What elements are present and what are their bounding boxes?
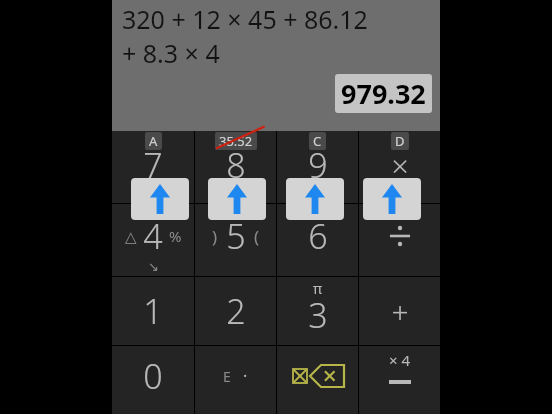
staticText: · — [243, 365, 248, 387]
button[interactable]: π — [277, 277, 358, 345]
button[interactable]: Move up B — [208, 178, 266, 220]
button[interactable] — [359, 204, 440, 276]
button[interactable]: E — [195, 346, 276, 414]
button[interactable]: × 4 — [359, 346, 440, 414]
staticText: 8 — [226, 142, 246, 188]
staticText: 0 — [143, 353, 163, 399]
staticText: × — [391, 145, 409, 186]
button[interactable]: 35.52 — [195, 131, 276, 203]
button[interactable]: ) — [195, 204, 276, 276]
button[interactable]: Move up A — [131, 178, 189, 220]
staticText: 5 — [226, 213, 246, 259]
staticText: 979.32 — [341, 75, 426, 112]
staticText: ( — [254, 225, 260, 248]
button[interactable]: 6 — [277, 204, 358, 276]
staticText: 7 — [143, 142, 163, 188]
staticText: × 4 — [389, 350, 411, 370]
staticText: A — [149, 132, 158, 150]
staticText: % — [169, 226, 182, 246]
button[interactable]: 0 — [112, 346, 194, 414]
button[interactable]: A — [112, 131, 194, 203]
staticText: π — [313, 279, 323, 298]
staticText: 9 — [308, 142, 328, 188]
staticText: 1 — [143, 288, 163, 334]
button[interactable]: 1 — [112, 277, 194, 345]
staticText: + — [391, 291, 409, 332]
staticText: E — [223, 367, 231, 386]
button[interactable]: 2 — [195, 277, 276, 345]
staticText: 35.52 — [219, 132, 253, 150]
staticText: 2 — [226, 288, 246, 334]
button[interactable]: Move up D — [363, 178, 421, 220]
staticText: C — [313, 132, 322, 150]
staticText: 3 — [308, 292, 328, 338]
staticText: ↘ — [148, 259, 159, 274]
staticText: 4 — [143, 213, 163, 259]
button[interactable]: C — [277, 131, 358, 203]
staticText: △ — [125, 228, 137, 245]
button[interactable]: Backspace — [277, 346, 358, 414]
staticText: 320 + 12 × 45 + 86.12 — [122, 2, 368, 36]
staticText: 6 — [308, 213, 328, 259]
button[interactable]: + — [359, 277, 440, 345]
button[interactable]: D — [359, 131, 440, 203]
staticText: + 8.3 × 4 — [122, 36, 220, 70]
staticText: D — [395, 132, 405, 150]
button[interactable]: △ — [112, 204, 194, 276]
button[interactable]: Move up C — [286, 178, 344, 220]
staticText: ) — [212, 225, 218, 248]
